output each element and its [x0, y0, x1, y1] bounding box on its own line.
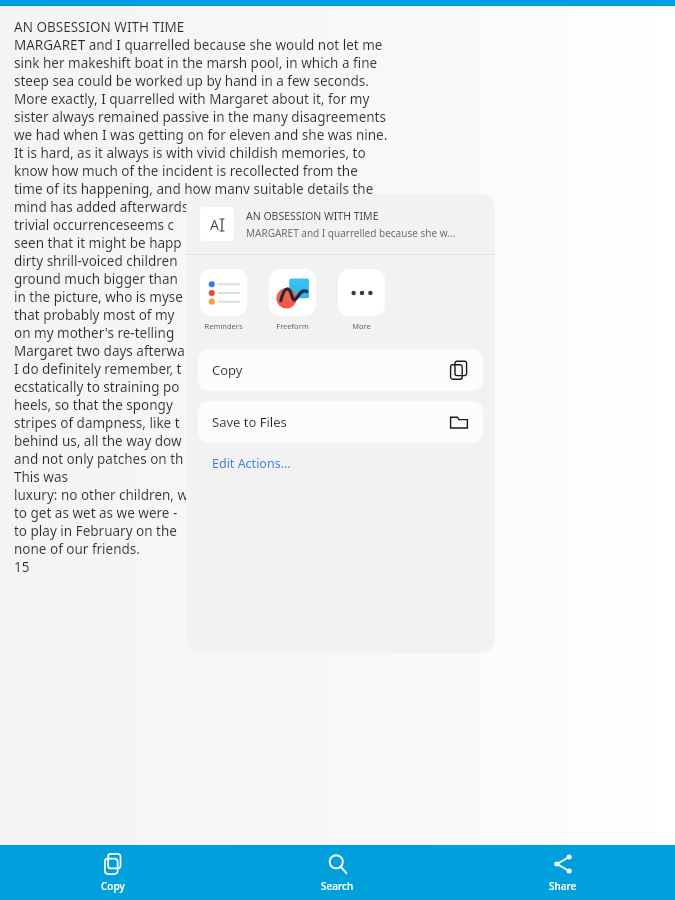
button[interactable]: Edit Actions...: [212, 455, 291, 472]
staticText: sink her makeshift boat in the marsh poo…: [14, 54, 378, 72]
staticText: know how much of the incident is recolle…: [14, 162, 358, 180]
button[interactable]: Search: [225, 845, 450, 900]
staticText: ground much bigger than: [14, 270, 178, 288]
staticText: ecstatically to straining po: [14, 378, 180, 396]
staticText: It is hard, as it always is with vivid c…: [14, 144, 366, 162]
staticText: Share: [549, 879, 577, 893]
staticText: MARGARET and I quarrelled because she wo…: [14, 36, 383, 54]
other: Search: [327, 853, 349, 875]
staticText: to get as wet as we were -: [14, 504, 178, 522]
button[interactable]: Reminders: [200, 269, 247, 331]
staticText: AN OBSESSION WITH TIME: [14, 18, 185, 36]
other: Copy: [102, 853, 124, 875]
staticText: Margaret two days afterwa: [14, 342, 185, 360]
staticText: Copy: [101, 879, 125, 893]
staticText: AN OBSESSION WITH TIME: [246, 209, 379, 223]
staticText: that probably most of my: [14, 306, 175, 324]
staticText: heels, so that the spongy: [14, 396, 173, 414]
staticText: MARGARET and I quarrelled because she w.…: [246, 226, 456, 240]
staticText: in the picture, who is myse: [14, 288, 183, 306]
staticText: seen that it might be happ: [14, 234, 182, 252]
staticText: luxury: no other children, w: [14, 486, 189, 504]
button[interactable]: Copy: [198, 349, 483, 391]
staticText: stripes of dampness, like t: [14, 414, 180, 432]
button[interactable]: Save to Files: [198, 401, 483, 443]
other: Share: [552, 853, 574, 875]
staticText: A: [210, 215, 219, 234]
staticText: steep sea could be worked up by hand in …: [14, 72, 369, 90]
staticText: behind us, all the way dow: [14, 432, 182, 450]
button[interactable]: More: [338, 269, 385, 331]
staticText: Copy: [212, 361, 243, 379]
staticText: 15: [14, 558, 30, 576]
button[interactable]: Share: [450, 845, 675, 900]
staticText: This was: [14, 468, 68, 486]
staticText: on my mother's re-telling: [14, 324, 175, 342]
staticText: trivial occurrenceseems c: [14, 216, 175, 234]
staticText: Freeform: [276, 321, 309, 331]
staticText: Reminders: [204, 321, 243, 331]
staticText: More: [352, 321, 371, 331]
staticText: I do definitely remember, t: [14, 360, 182, 378]
staticText: mind has added afterwards. It is one of …: [14, 198, 370, 216]
staticText: we had when I was getting on for eleven …: [14, 126, 388, 144]
staticText: none of our friends.: [14, 540, 140, 558]
button[interactable]: A: [186, 194, 495, 254]
staticText: to play in February on the: [14, 522, 177, 540]
staticText: and not only patches on th: [14, 450, 184, 468]
staticText: More exactly, I quarrelled with Margaret…: [14, 90, 370, 108]
staticText: dirty shrill-voiced children: [14, 252, 178, 270]
button[interactable]: Copy: [0, 845, 225, 900]
staticText: sister always remained passive in the ma…: [14, 108, 386, 126]
staticText: Save to Files: [212, 413, 287, 431]
button[interactable]: Freeform: [269, 269, 316, 331]
staticText: Search: [321, 879, 354, 893]
staticText: time of its happening, and how many suit…: [14, 180, 374, 198]
staticText: Edit Actions...: [212, 455, 291, 472]
